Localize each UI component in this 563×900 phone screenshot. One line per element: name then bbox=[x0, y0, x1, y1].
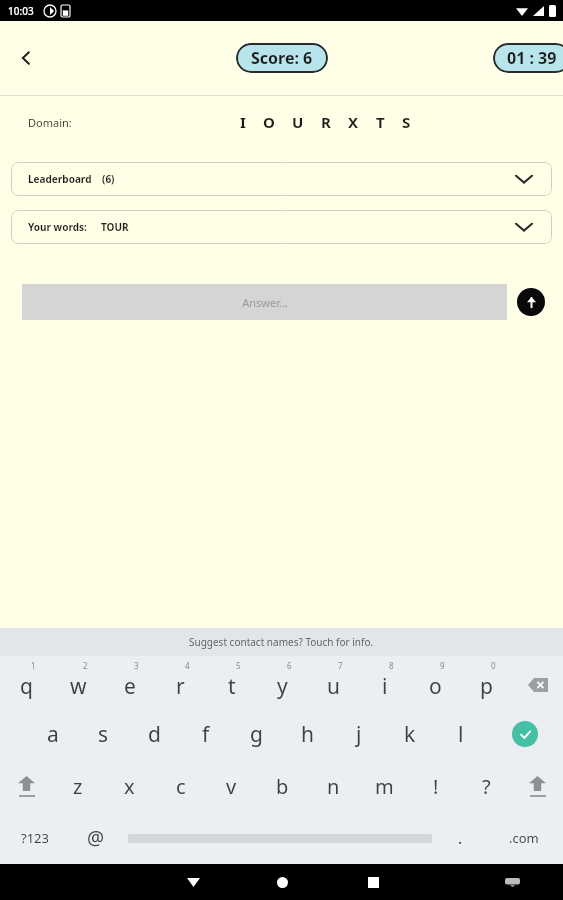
staticText: X bbox=[348, 112, 359, 132]
button[interactable]: a bbox=[27, 708, 78, 760]
staticText: t bbox=[228, 672, 236, 701]
button[interactable]: z bbox=[52, 760, 104, 812]
button[interactable]: ?123 bbox=[0, 812, 69, 864]
button[interactable]: c bbox=[155, 760, 206, 812]
button[interactable]: d bbox=[129, 708, 180, 760]
staticText: h bbox=[301, 720, 314, 749]
staticText: 5 bbox=[236, 660, 241, 671]
staticText: S bbox=[402, 112, 411, 132]
button[interactable]: . bbox=[436, 812, 485, 864]
button[interactable]: Hide keyboard bbox=[491, 864, 533, 900]
staticText: r bbox=[176, 672, 185, 701]
button[interactable]: 3 bbox=[104, 656, 155, 708]
staticText: z bbox=[73, 773, 83, 800]
button[interactable]: 8 bbox=[359, 656, 410, 708]
button[interactable]: Suggest contact names? Touch for info. bbox=[0, 628, 563, 656]
staticText: 10:03 bbox=[8, 4, 34, 18]
button[interactable]: h bbox=[282, 708, 333, 760]
button[interactable]: 01 : 39 bbox=[493, 43, 563, 73]
staticText: O bbox=[263, 112, 275, 132]
button[interactable]: Back bbox=[172, 864, 214, 900]
staticText: u bbox=[327, 672, 340, 701]
staticText: n bbox=[327, 773, 340, 800]
button[interactable]: b bbox=[257, 760, 308, 812]
button[interactable]: Submit answer bbox=[517, 288, 545, 316]
button[interactable]: ? bbox=[461, 760, 512, 812]
staticText: c bbox=[176, 773, 186, 800]
button[interactable]: k bbox=[384, 708, 435, 760]
staticText: d bbox=[148, 720, 161, 749]
staticText: Suggest contact names? Touch for info. bbox=[189, 635, 374, 649]
staticText: 01 : 39 bbox=[507, 47, 557, 69]
staticText: f bbox=[202, 720, 210, 749]
staticText: ? bbox=[482, 773, 491, 800]
staticText: l bbox=[458, 720, 464, 749]
staticText: p bbox=[480, 672, 493, 701]
button[interactable]: Backspace bbox=[512, 656, 563, 708]
button[interactable]: 1 bbox=[0, 656, 52, 708]
staticText: Answer... bbox=[242, 295, 288, 310]
staticText: 6 bbox=[287, 660, 292, 671]
staticText: k bbox=[404, 720, 416, 749]
staticText: .com bbox=[509, 829, 539, 847]
button[interactable]: 5 bbox=[206, 656, 257, 708]
staticText: v bbox=[226, 773, 237, 800]
button[interactable]: s bbox=[78, 708, 129, 760]
staticText: e bbox=[124, 672, 136, 701]
button[interactable]: m bbox=[359, 760, 410, 812]
staticText: 4 bbox=[185, 660, 190, 671]
staticText: U bbox=[292, 112, 304, 132]
staticText: 8 bbox=[389, 660, 394, 671]
staticText: g bbox=[250, 720, 263, 749]
staticText: (6) bbox=[102, 172, 115, 186]
staticText: w bbox=[70, 672, 87, 701]
staticText: @ bbox=[87, 825, 105, 851]
staticText: a bbox=[47, 720, 59, 749]
button[interactable]: n bbox=[308, 760, 359, 812]
staticText: R bbox=[321, 112, 331, 132]
staticText: s bbox=[98, 720, 109, 749]
staticText: b bbox=[276, 773, 289, 800]
staticText: 7 bbox=[338, 660, 343, 671]
staticText: x bbox=[124, 773, 135, 800]
button[interactable]: Space bbox=[123, 812, 436, 864]
staticText: I bbox=[240, 112, 246, 132]
button[interactable]: 2 bbox=[52, 656, 104, 708]
staticText: 2 bbox=[83, 660, 88, 671]
button[interactable]: g bbox=[231, 708, 282, 760]
button[interactable]: Back bbox=[6, 38, 46, 78]
staticText: ?123 bbox=[21, 829, 49, 847]
button[interactable]: l bbox=[435, 708, 486, 760]
button[interactable]: 4 bbox=[155, 656, 206, 708]
button[interactable]: 6 bbox=[257, 656, 308, 708]
button[interactable]: Answer... bbox=[22, 284, 507, 320]
button[interactable]: 0 bbox=[461, 656, 512, 708]
button[interactable]: f bbox=[180, 708, 231, 760]
staticText: j bbox=[356, 720, 362, 749]
staticText: o bbox=[429, 672, 442, 701]
button[interactable]: Your words: bbox=[11, 210, 552, 244]
button[interactable]: @ bbox=[69, 812, 123, 864]
staticText: Leaderboard bbox=[28, 172, 92, 186]
staticText: q bbox=[20, 672, 33, 701]
button[interactable]: Enter bbox=[486, 708, 563, 760]
button[interactable]: Score: 6 bbox=[236, 43, 328, 73]
button[interactable]: Shift bbox=[512, 760, 563, 812]
staticText: TOUR bbox=[101, 220, 129, 234]
button[interactable]: .com bbox=[485, 812, 563, 864]
button[interactable]: v bbox=[206, 760, 257, 812]
button[interactable]: x bbox=[104, 760, 155, 812]
button[interactable]: Recent apps bbox=[352, 864, 394, 900]
button[interactable]: Home bbox=[261, 864, 303, 900]
staticText: ! bbox=[433, 773, 439, 800]
staticText: 9 bbox=[440, 660, 445, 671]
button[interactable]: ! bbox=[410, 760, 461, 812]
button[interactable]: Shift bbox=[0, 760, 52, 812]
button[interactable]: Leaderboard bbox=[11, 162, 552, 196]
button[interactable]: 9 bbox=[410, 656, 461, 708]
button[interactable]: j bbox=[333, 708, 384, 760]
staticText: i bbox=[382, 672, 388, 701]
staticText: T bbox=[376, 112, 385, 132]
button[interactable]: 7 bbox=[308, 656, 359, 708]
staticText: m bbox=[375, 773, 394, 800]
